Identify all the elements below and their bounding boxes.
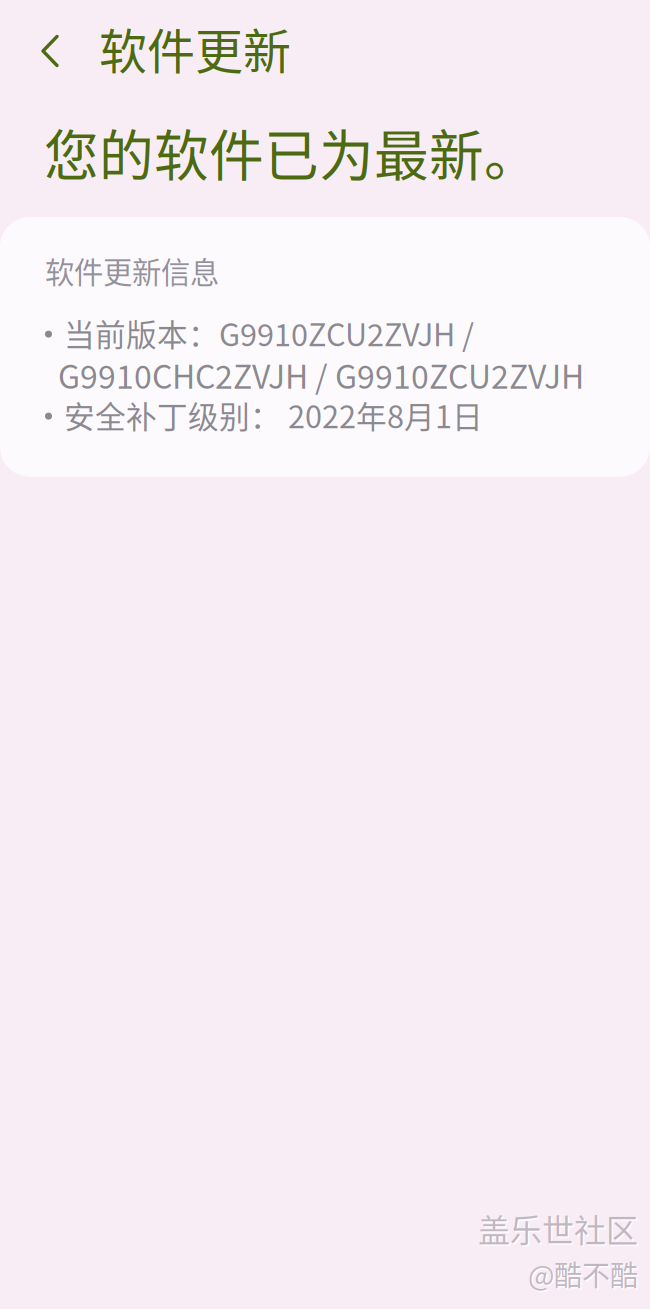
staticText: 软件更新 [99,13,291,83]
staticText: 您的软件已为最新。 [44,112,539,191]
staticText: 当前版本：G9910ZCU2ZVJH / [64,311,474,355]
button[interactable]: Back [21,18,79,78]
staticText: 软件更新信息 [45,249,219,292]
staticText: @酷不酷 [528,1253,638,1294]
staticText: @酷不酷 [529,1255,639,1295]
staticText: G9910CHC2ZVJH / G9910ZCU2ZVJH [58,352,584,398]
staticText: 盖乐世社区 [479,1207,639,1253]
staticText: 盖乐世社区 [478,1205,638,1251]
staticText: 安全补丁级别： 2022年8月1日 [64,393,483,437]
